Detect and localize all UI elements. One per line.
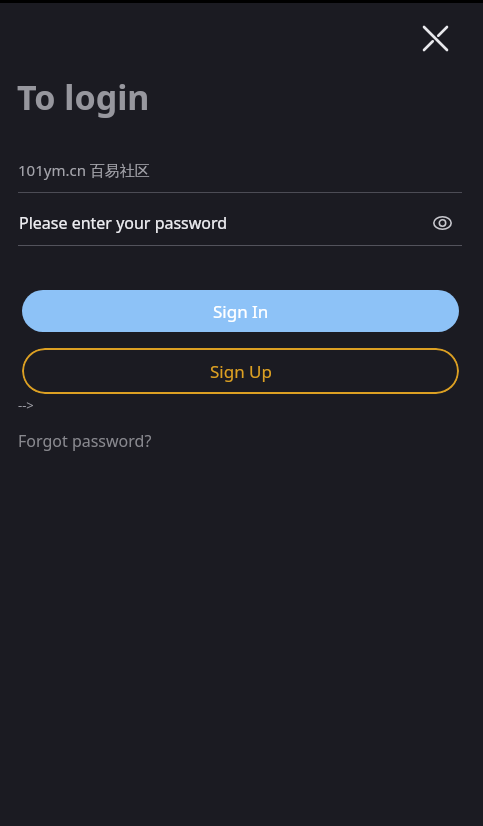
- button[interactable]: Please enter your password: [0, 206, 483, 244]
- staticText: 101ym.cn 百易社区: [18, 160, 150, 180]
- button[interactable]: 101ym.cn 百易社区: [0, 152, 483, 192]
- button[interactable]: Sign Up: [22, 348, 459, 394]
- button[interactable]: [417, 20, 453, 56]
- button[interactable]: Forgot password?: [18, 430, 152, 452]
- button[interactable]: Sign In: [22, 290, 459, 332]
- staticText: Forgot password?: [18, 430, 152, 452]
- staticText: Please enter your password: [19, 212, 228, 234]
- staticText: Sign In: [213, 300, 269, 323]
- staticText: -->: [18, 396, 34, 414]
- staticText: To login: [17, 74, 150, 120]
- staticText: Sign Up: [210, 360, 272, 383]
